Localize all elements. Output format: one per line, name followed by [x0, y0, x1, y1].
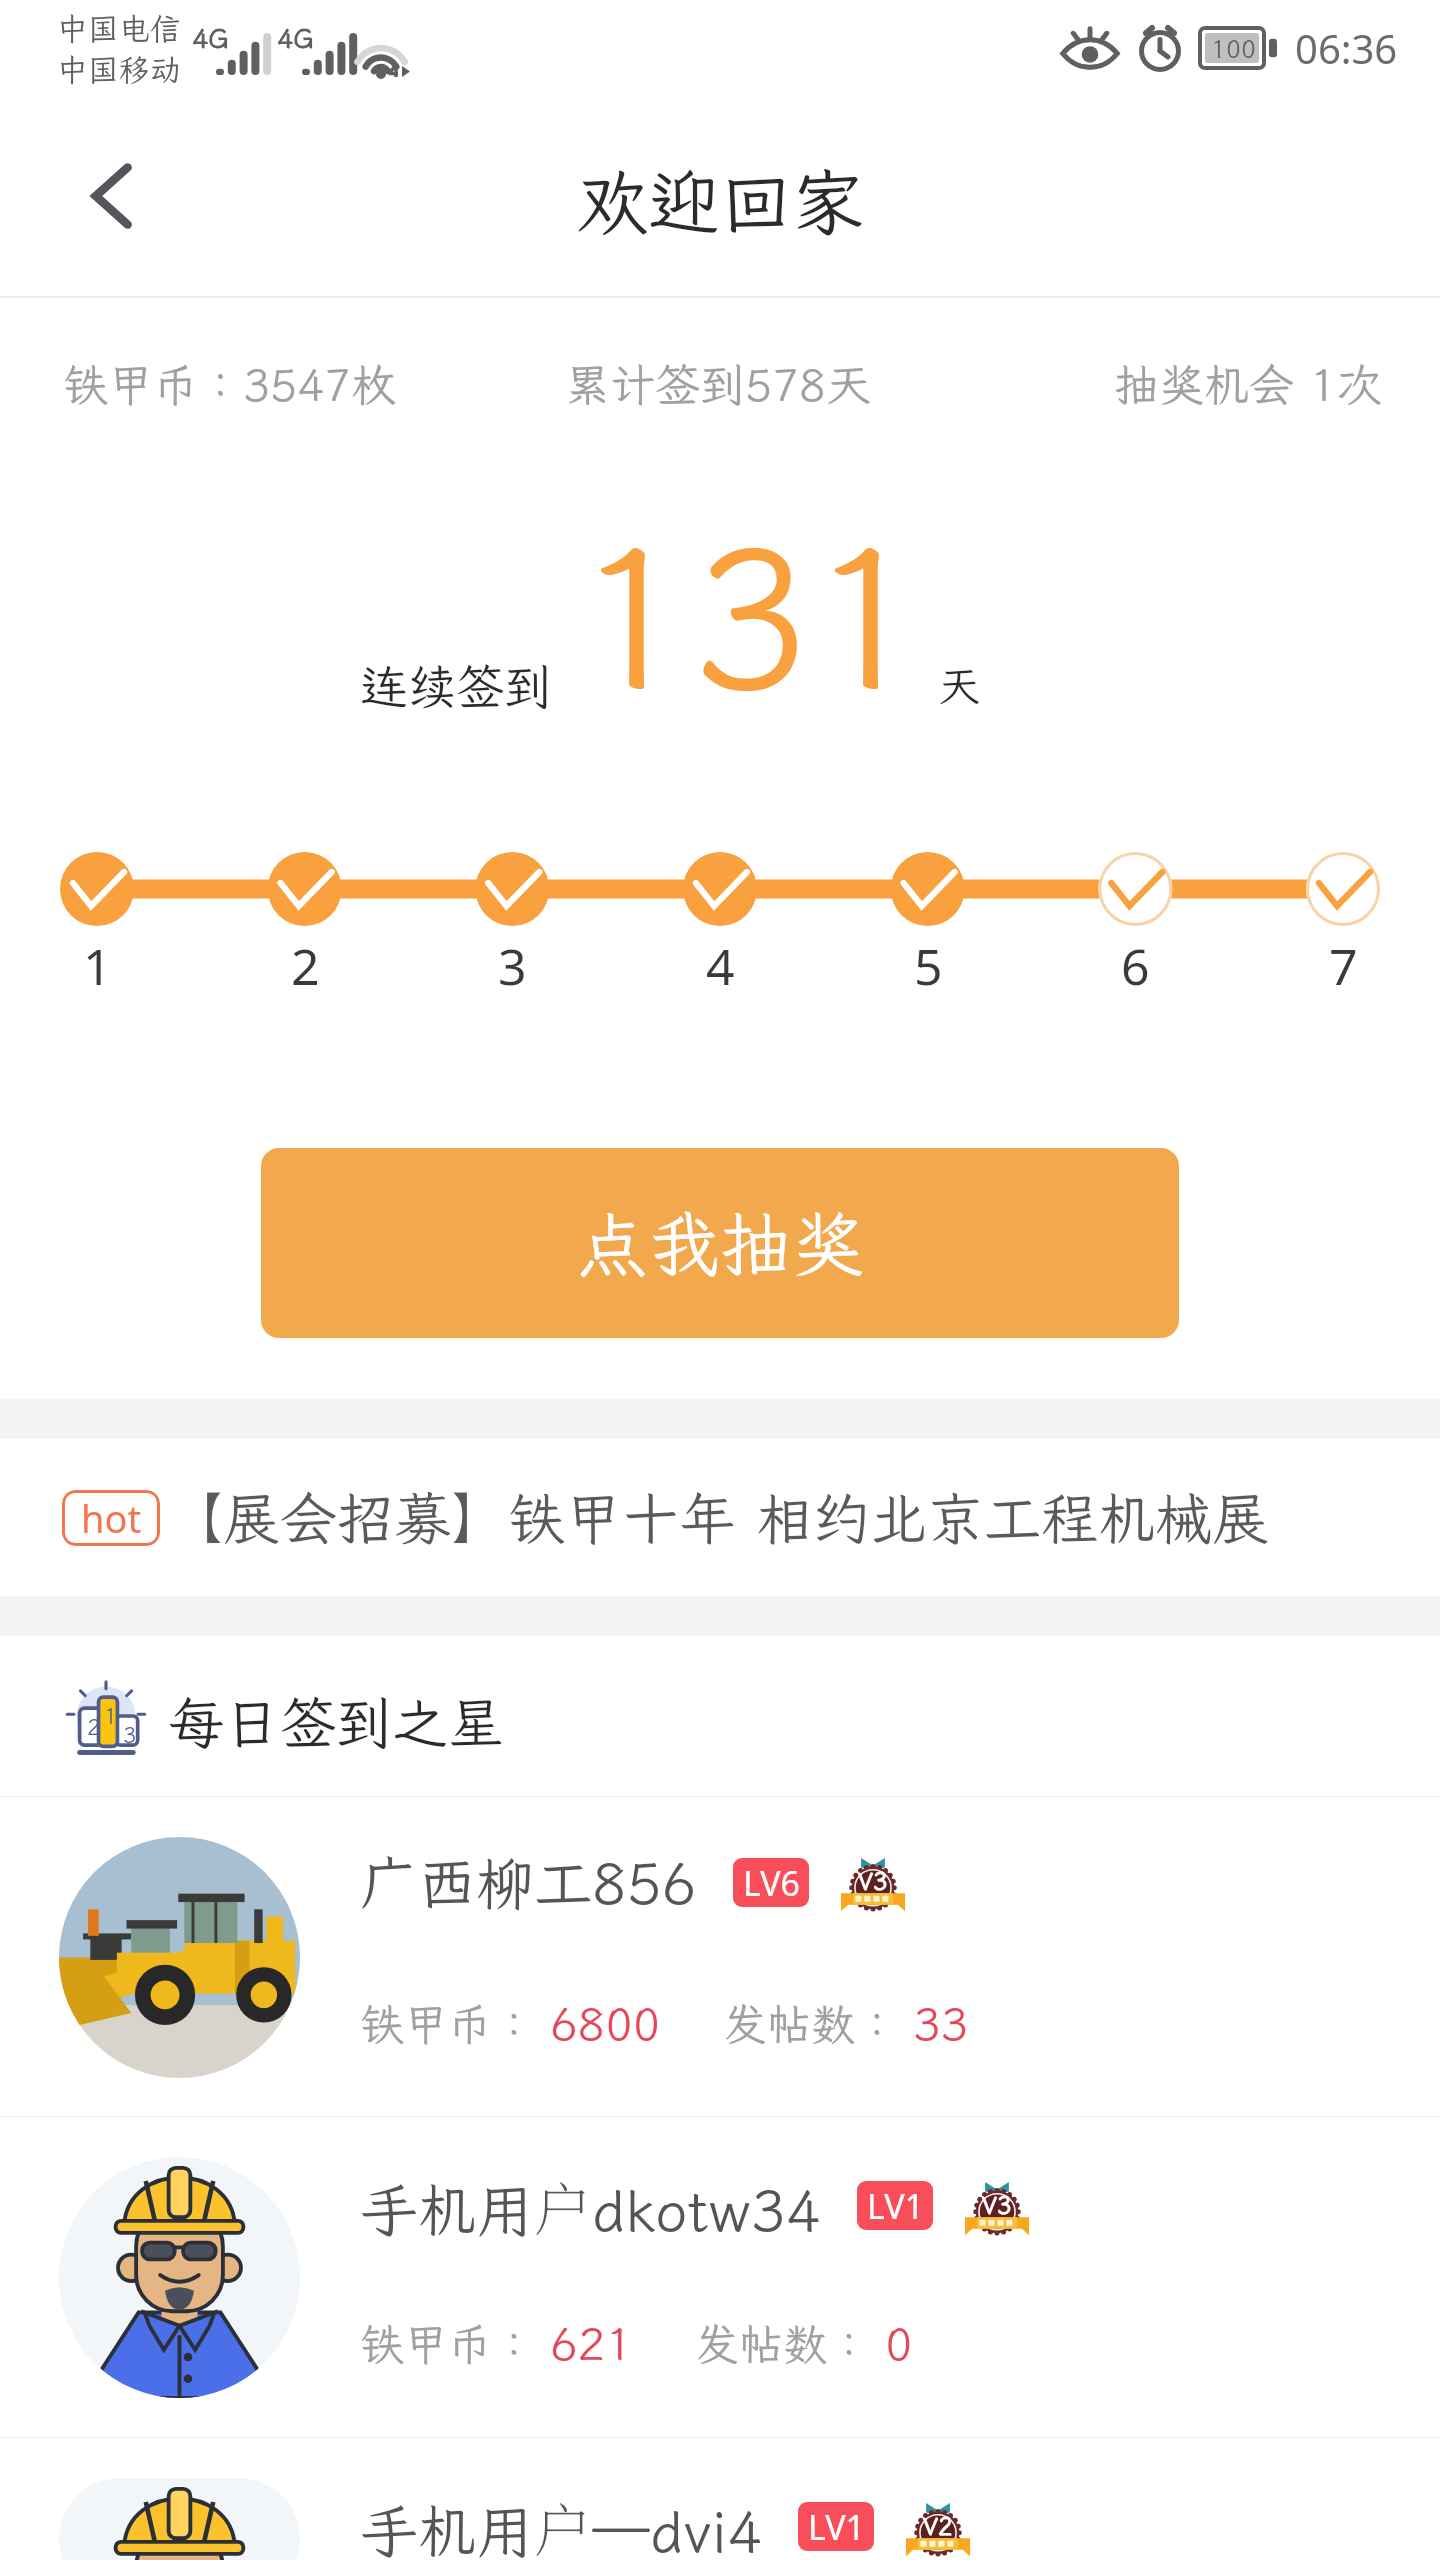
button[interactable]: Day 7 check-in — [1306, 852, 1380, 926]
staticText: 欢迎回家 — [576, 154, 865, 249]
button[interactable]: 手机用户dkotw34 — [0, 2117, 1440, 2437]
staticText: 1 — [83, 932, 112, 1000]
staticText: 4G — [192, 20, 229, 56]
staticText: 铁甲币：3547枚 — [63, 355, 397, 414]
staticText: 3 — [498, 932, 527, 1000]
button[interactable]: 点我抽奖 — [261, 1148, 1179, 1338]
staticText: 6 — [1121, 932, 1150, 1000]
staticText: 4 — [706, 932, 735, 1000]
staticText: 5 — [914, 932, 943, 1000]
staticText: hot — [81, 1492, 142, 1544]
staticText: 131 — [575, 486, 926, 743]
staticText: 中国电信 — [57, 8, 181, 49]
staticText: 每日签到之星 — [168, 1685, 504, 1759]
staticText: 广西柳工856 — [360, 1844, 697, 1920]
staticText: 4G — [277, 20, 314, 56]
staticText: 点我抽奖 — [576, 1196, 865, 1291]
staticText: 3 — [123, 1720, 137, 1749]
staticText: 连续签到 — [360, 654, 553, 717]
staticText: 铁甲币： — [360, 2315, 536, 2373]
staticText: 2 — [291, 932, 320, 1000]
staticText: 发帖数： — [695, 2315, 871, 2373]
button[interactable]: 手机用户—dvi4 — [0, 2438, 1440, 2560]
staticText: 累计签到578天 — [565, 355, 872, 414]
staticText: 621 — [550, 2313, 633, 2374]
staticText: LV6 — [743, 1860, 800, 1906]
staticText: 发帖数： — [723, 1995, 899, 2053]
staticText: 100 — [1211, 32, 1257, 65]
staticText: 【展会招募】铁甲十年 相约北京工程机械展 — [166, 1480, 1269, 1555]
staticText: 抽奖机会 1次 — [1114, 355, 1382, 414]
staticText: 06:36 — [1295, 21, 1398, 75]
staticText: V2 — [923, 2510, 953, 2542]
button[interactable]: Day 4 check-in — [683, 852, 757, 926]
button[interactable]: Back — [56, 140, 168, 252]
staticText: LV1 — [867, 2183, 924, 2229]
staticText: V3 — [982, 2189, 1012, 2221]
button[interactable]: Day 6 check-in — [1098, 852, 1172, 926]
staticText: 33 — [913, 1993, 969, 2054]
button[interactable]: hot — [0, 1439, 1440, 1596]
button[interactable]: Day 2 check-in — [268, 852, 342, 926]
staticText: 手机用户dkotw34 — [360, 2164, 821, 2247]
staticText: 6800 — [550, 1993, 661, 2054]
staticText: 中国移动 — [57, 49, 181, 90]
button[interactable]: 广西柳工856 — [0, 1797, 1440, 2116]
staticText: 0 — [885, 2313, 913, 2374]
staticText: 2 — [87, 1712, 101, 1741]
staticText: 7 — [1329, 932, 1358, 1000]
staticText: 铁甲币： — [360, 1995, 536, 2053]
staticText: V3 — [858, 1865, 888, 1897]
staticText: 手机用户—dvi4 — [360, 2485, 762, 2560]
staticText: 1 — [104, 1701, 118, 1730]
button[interactable]: Day 5 check-in — [891, 852, 965, 926]
staticText: 天 — [938, 658, 981, 713]
button[interactable]: Day 1 check-in — [60, 852, 134, 926]
staticText: LV1 — [808, 2504, 865, 2550]
button[interactable]: Day 3 check-in — [475, 852, 549, 926]
